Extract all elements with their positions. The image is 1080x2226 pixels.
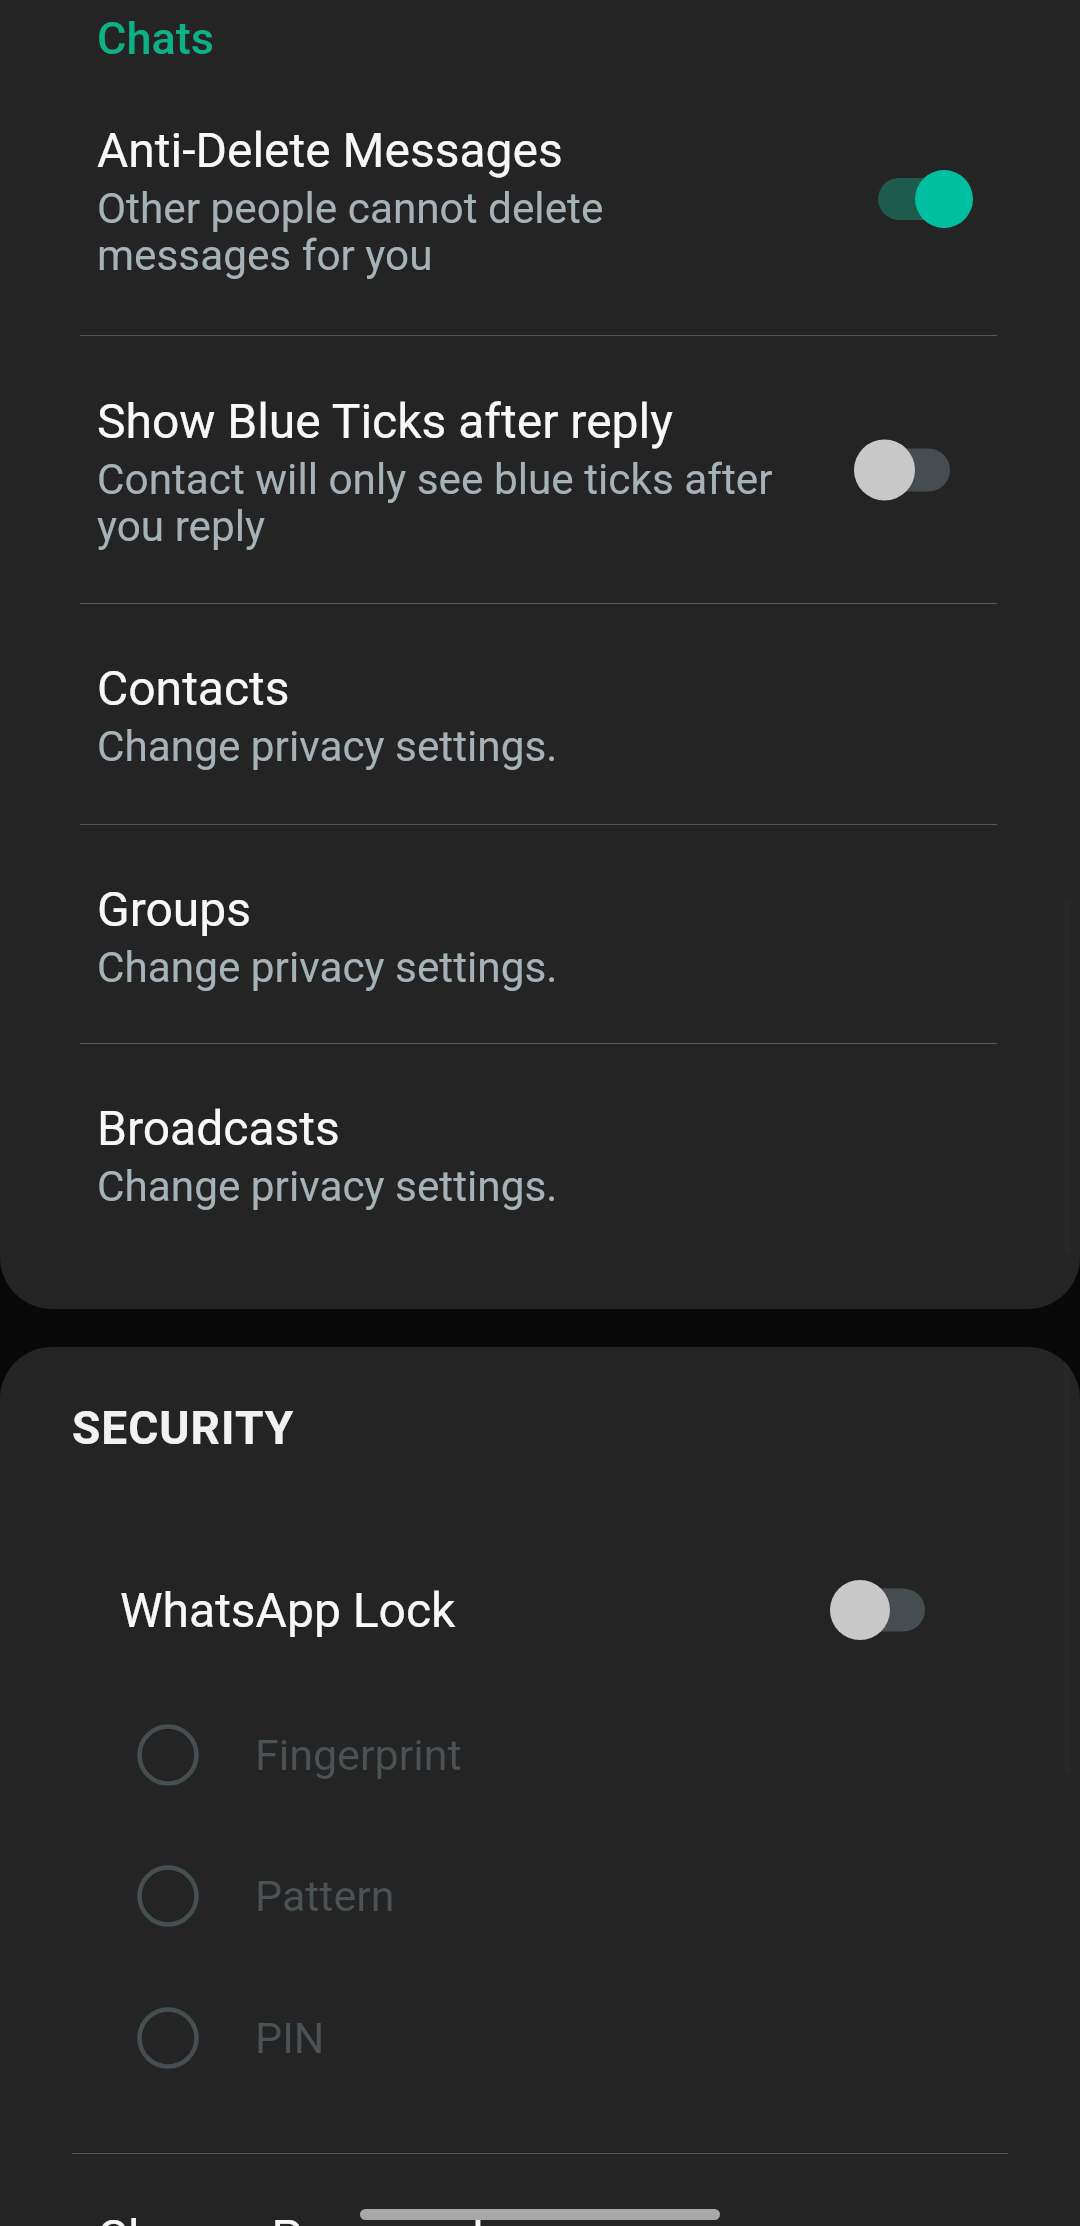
staticText: Change Password bbox=[97, 2209, 484, 2226]
staticText: SECURITY bbox=[72, 1401, 295, 1455]
button[interactable]: WhatsApp Lock toggle bbox=[800, 1575, 940, 1645]
button[interactable]: Contacts bbox=[0, 605, 1080, 824]
staticText: Broadcasts bbox=[97, 1100, 340, 1156]
staticText: PIN bbox=[255, 2013, 325, 2063]
button[interactable]: Groups bbox=[0, 826, 1080, 1045]
staticText: WhatsApp Lock bbox=[120, 1582, 456, 1638]
button[interactable]: Show Blue Ticks after reply bbox=[0, 337, 1080, 603]
button[interactable]: Show Blue Ticks after reply toggle bbox=[824, 435, 964, 505]
staticText: Contacts bbox=[97, 660, 290, 716]
staticText: Contact will only see blue ticks after y… bbox=[97, 455, 797, 552]
staticText: Other people cannot delete messages for … bbox=[97, 184, 617, 281]
staticText: Anti-Delete Messages bbox=[97, 122, 563, 178]
button[interactable]: PIN bbox=[0, 1968, 1080, 2108]
button[interactable]: Anti-Delete Messages toggle bbox=[858, 164, 998, 234]
button[interactable]: Change Password bbox=[0, 2155, 1080, 2226]
staticText: Chats bbox=[97, 12, 214, 65]
button[interactable]: Broadcasts bbox=[0, 1045, 1080, 1264]
button[interactable]: Fingerprint bbox=[0, 1685, 1080, 1825]
staticText: Fingerprint bbox=[255, 1730, 462, 1780]
staticText: Show Blue Ticks after reply bbox=[97, 393, 673, 449]
button[interactable]: WhatsApp Lock bbox=[0, 1556, 1080, 1686]
button[interactable]: Anti-Delete Messages bbox=[0, 74, 1080, 334]
staticText: Groups bbox=[97, 881, 252, 937]
button[interactable]: Pattern bbox=[0, 1826, 1080, 1966]
staticText: Change privacy settings. bbox=[97, 943, 558, 993]
staticText: Change privacy settings. bbox=[97, 722, 558, 772]
staticText: Pattern bbox=[255, 1871, 395, 1921]
staticText: Change privacy settings. bbox=[97, 1162, 558, 1212]
